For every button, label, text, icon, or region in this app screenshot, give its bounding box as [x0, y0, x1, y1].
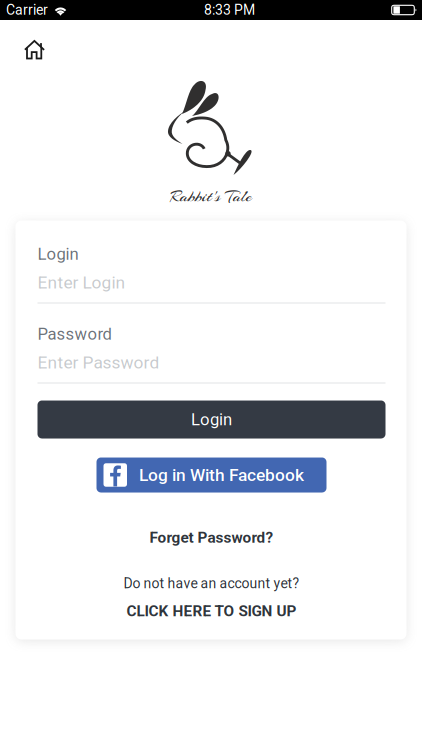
staticText: Enter Login [37, 272, 125, 293]
staticText: 8:33 PM [204, 2, 255, 18]
button[interactable]: Log in With Facebook [96, 457, 326, 492]
staticText: Login [37, 244, 78, 264]
button[interactable]: Forget Password? [149, 530, 273, 544]
staticText: Login [191, 410, 232, 429]
button[interactable]: CLICK HERE TO SIGN UP [126, 604, 296, 617]
staticText: Enter Password [37, 352, 159, 373]
staticText: Password [37, 324, 111, 344]
staticText: Forget Password? [149, 528, 273, 546]
staticText: Do not have an account yet? [123, 575, 299, 592]
button[interactable]: Home [0, 20, 55, 79]
button[interactable]: Login [37, 400, 385, 438]
staticText: CLICK HERE TO SIGN UP [126, 602, 296, 620]
staticText: Log in With Facebook [139, 465, 304, 485]
staticText: Rabbit's Tale [170, 186, 252, 207]
staticText: Carrier [6, 2, 48, 18]
